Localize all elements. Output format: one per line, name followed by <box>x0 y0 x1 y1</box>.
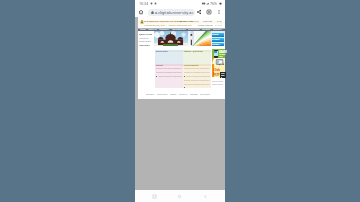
staticText: Examination <box>188 28 200 31</box>
staticText: Revised schedule of the winter examinati… <box>184 79 210 81</box>
button[interactable]: Home <box>174 190 185 202</box>
staticText: Admission <box>221 72 225 78</box>
button[interactable]: Privacy Policy <box>157 93 168 95</box>
staticText: University Department <box>139 37 154 43</box>
staticText: Dr. Babasaheb Ambedkar Marathwada Univer… <box>144 20 193 23</box>
staticText: Tenders / Quotations <box>184 50 203 52</box>
staticText: Research <box>213 28 222 31</box>
staticText: 76% <box>210 1 218 6</box>
staticText: FAQ <box>217 19 222 22</box>
staticText: Student Login <box>212 38 224 42</box>
staticText: Sitemap <box>203 19 213 22</box>
button[interactable]: Examination <box>188 28 200 31</box>
staticText: Video Gallery <box>212 83 224 85</box>
button[interactable]: About Us <box>148 28 157 31</box>
button[interactable]: Recent apps <box>149 190 160 202</box>
button[interactable]: Click here <box>212 58 225 77</box>
staticText: Home <box>179 19 186 22</box>
staticText: Affiliated Colleges <box>139 44 154 46</box>
staticText: About Us <box>148 28 157 31</box>
button[interactable]: Sitemap <box>170 93 177 95</box>
staticText: a.digitaluniversity.ac <box>155 10 194 15</box>
button[interactable]: Screen Reader <box>198 24 213 27</box>
staticText: to visit <box>213 74 219 76</box>
staticText: Online Admission <box>212 33 224 37</box>
staticText: Home <box>140 28 146 31</box>
staticText: Photo Gallery <box>212 80 224 82</box>
button[interactable]: Home <box>179 19 186 22</box>
button[interactable]: Contact <box>190 19 199 22</box>
staticText: Sitemap <box>170 93 177 95</box>
staticText: Old Website <box>200 93 210 95</box>
button[interactable]: Tabs <box>205 8 213 16</box>
button[interactable]: BAMU <box>212 49 225 58</box>
staticText: 10:34 <box>139 1 149 6</box>
button[interactable]: Research <box>213 28 222 31</box>
staticText: Contact Us <box>179 93 188 95</box>
button[interactable]: Online Admission <box>212 33 224 37</box>
staticText: Revised schedule of the winter examinati… <box>156 67 182 69</box>
button[interactable]: College Login <box>212 43 224 46</box>
staticText: Administration <box>172 28 186 31</box>
staticText: Recent News <box>156 50 168 52</box>
button[interactable]: Administration <box>172 28 186 31</box>
button[interactable]: Academics <box>159 28 170 31</box>
staticText: Aurangabad (MS), India • Website : www.b… <box>144 24 192 27</box>
staticText: Privacy Policy <box>157 93 168 95</box>
staticText: Notice for supply of laboratory equipmen… <box>158 75 182 77</box>
staticText: Circular for academic year 2023-24 <box>184 83 210 85</box>
button[interactable]: Home <box>140 28 146 31</box>
staticText: Contact <box>190 19 199 22</box>
staticText: Revised schedule of the winter examinati… <box>184 67 210 69</box>
staticText: Mobile <box>219 53 226 56</box>
staticText: Students <box>202 28 211 31</box>
staticText: Notice for supply of laboratory equipmen… <box>186 75 210 77</box>
staticText: College Login <box>212 43 224 46</box>
button[interactable]: Old Website <box>200 93 210 95</box>
button[interactable]: Home <box>137 8 145 16</box>
button[interactable]: Share <box>195 8 203 16</box>
button[interactable]: Contact Us <box>179 93 188 95</box>
button[interactable]: Back <box>200 190 211 202</box>
button[interactable]: A- A A+ <box>215 24 223 27</box>
staticText: Notices <box>156 64 163 66</box>
button[interactable]: More options <box>215 8 223 16</box>
staticText: Quick Links <box>139 33 153 36</box>
button[interactable]: Copyright <box>190 93 198 95</box>
staticText: Disclaimer <box>146 93 155 95</box>
staticText: Circular for academic year 2023-24 <box>156 71 182 73</box>
button[interactable]: FAQ <box>217 19 222 22</box>
button[interactable]: Sitemap <box>203 19 213 22</box>
staticText: Academics <box>159 28 170 31</box>
staticText: A- A A+ <box>215 24 223 27</box>
staticText: Click here <box>213 68 226 76</box>
staticText: Screen Reader <box>198 24 213 27</box>
button[interactable]: Student Login <box>212 38 224 42</box>
button[interactable]: a.digitaluniversity.ac <box>148 9 195 16</box>
staticText: Announcements <box>184 64 199 66</box>
staticText: Circular for academic year 2023-24 <box>184 71 210 73</box>
staticText: Copyright <box>190 93 198 95</box>
staticText: BAMU <box>219 50 227 53</box>
button[interactable]: Disclaimer <box>146 93 155 95</box>
button[interactable]: Students <box>202 28 211 31</box>
staticText: App <box>219 55 223 58</box>
